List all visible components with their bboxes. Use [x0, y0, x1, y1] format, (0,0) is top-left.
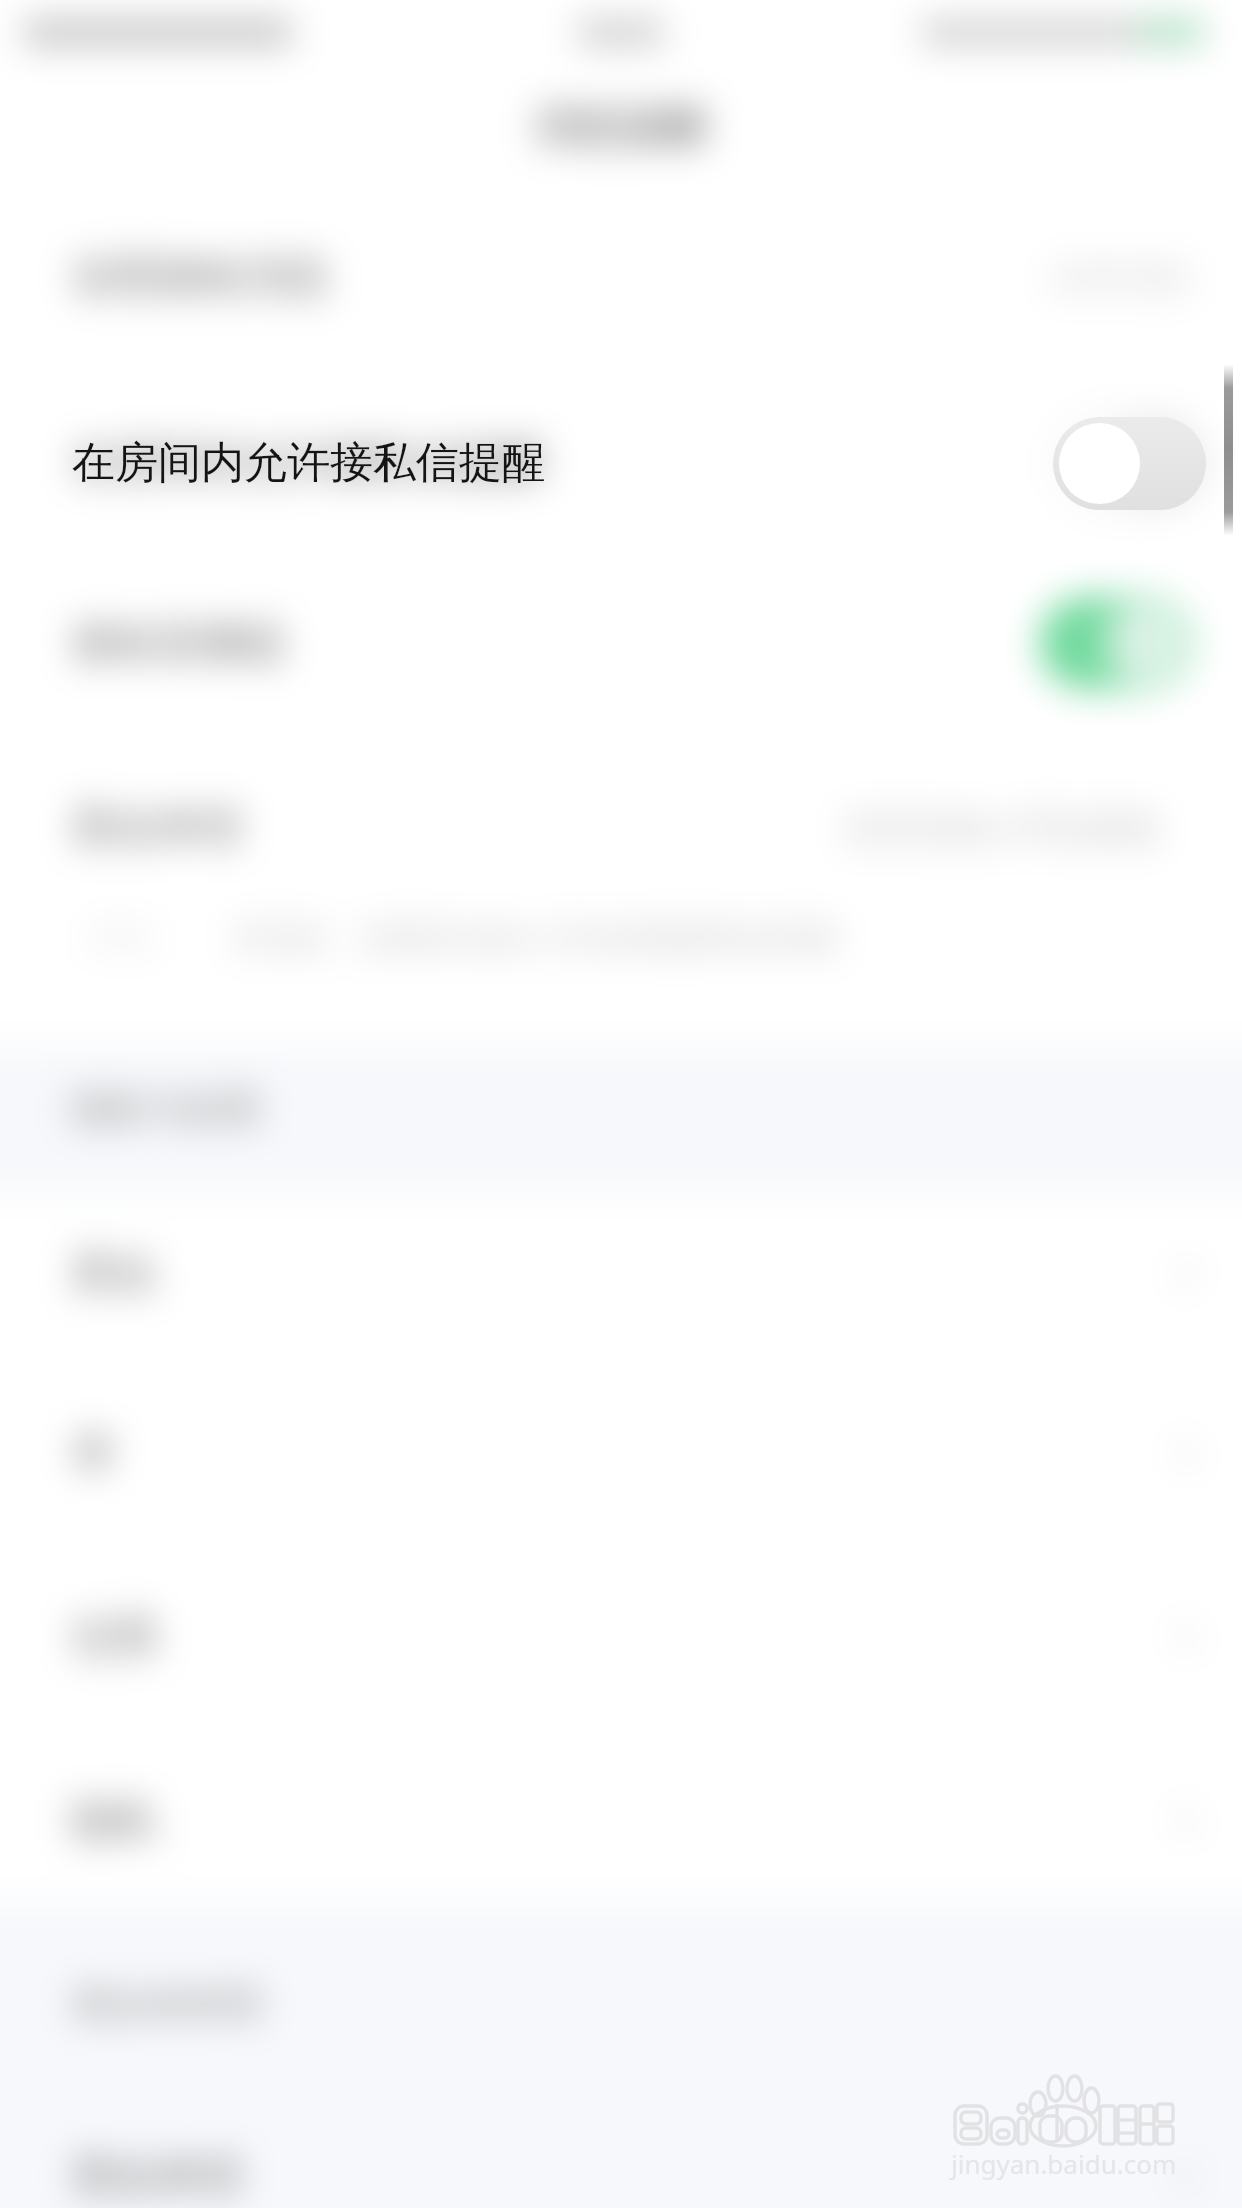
- button[interactable]: 在房间内允许接私信提醒: [0, 375, 1242, 551]
- button[interactable]: Allow private message alerts in room: [1053, 417, 1206, 510]
- other: Baidu Jingyan watermark: [0, 0, 1242, 2208]
- button[interactable]: 接收直播提: [0, 583, 1242, 703]
- button[interactable]: 黑名单管: [0, 2117, 1242, 2208]
- button[interactable]: 黑名单管: [0, 768, 1242, 888]
- staticText: 消息提醒: [533, 99, 709, 154]
- staticText: 在房间内允许接私信提醒: [72, 435, 545, 489]
- staticText: 黑名单管理: [72, 1981, 262, 2029]
- staticText: 隐私与设置: [72, 1085, 262, 1133]
- staticText: 黑名单管: [72, 2150, 244, 2204]
- staticText: 隐私: [72, 1794, 158, 1848]
- button[interactable]: 拉黑: [0, 1577, 1242, 1697]
- staticText: 举: [72, 1427, 115, 1481]
- staticText: 拉黑: [72, 1610, 158, 1664]
- button[interactable]: 设置接收消息: [0, 217, 1242, 337]
- button[interactable]: 在房间内允许接私信提醒: [0, 402, 1242, 522]
- button[interactable]: 隐私与设置: [0, 1049, 1242, 1169]
- staticText: 在房间内允许接私信提醒: [72, 436, 545, 490]
- staticText: 黑名单管: [72, 801, 244, 855]
- staticText: 设置接收消息: [72, 250, 330, 304]
- staticText: 接收直播提: [72, 616, 287, 670]
- button[interactable]: 黑名: [0, 1214, 1242, 1334]
- button[interactable]: 隐私: [0, 1761, 1242, 1881]
- button[interactable]: 黑名单管理: [0, 1945, 1242, 2065]
- staticText: jingyan.baidu.com: [951, 2146, 1177, 2181]
- staticText: 黑名: [72, 1247, 158, 1301]
